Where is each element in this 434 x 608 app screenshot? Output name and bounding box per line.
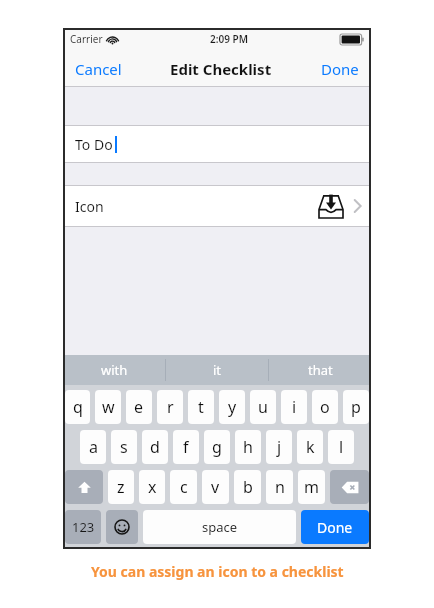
staticText: n <box>275 476 285 498</box>
staticText: e <box>134 396 144 418</box>
button[interactable]: s <box>111 430 137 464</box>
button[interactable]: p <box>343 390 369 424</box>
button[interactable]: n <box>266 470 293 504</box>
staticText: To Do <box>75 135 113 154</box>
button[interactable]: t <box>188 390 214 424</box>
staticText: u <box>258 396 268 418</box>
staticText: i <box>292 396 297 418</box>
button[interactable]: k <box>297 430 323 464</box>
staticText: space <box>202 518 238 536</box>
button[interactable]: j <box>266 430 292 464</box>
staticText: x <box>148 476 157 498</box>
button[interactable]: it <box>166 355 268 385</box>
button[interactable]: Done <box>319 55 361 83</box>
staticText: p <box>351 396 361 418</box>
button[interactable]: e <box>126 390 152 424</box>
button[interactable]: m <box>298 470 325 504</box>
button[interactable]: o <box>312 390 338 424</box>
staticText: that <box>308 361 333 379</box>
button[interactable]: 123 <box>65 510 101 544</box>
staticText: z <box>117 476 125 498</box>
button[interactable]: Cancel <box>73 55 124 83</box>
button[interactable]: z <box>108 470 134 504</box>
button[interactable]: with <box>63 355 165 385</box>
button[interactable]: y <box>219 390 245 424</box>
staticText: l <box>339 436 344 458</box>
staticText: Icon <box>75 197 104 216</box>
other: Inbox icon <box>316 191 346 221</box>
staticText: it <box>213 361 222 379</box>
staticText: d <box>150 436 160 458</box>
button[interactable]: Icon <box>63 186 371 226</box>
staticText: q <box>73 396 83 418</box>
staticText: m <box>304 476 319 498</box>
staticText: b <box>243 476 253 498</box>
staticText: 123 <box>72 518 95 536</box>
button[interactable]: c <box>170 470 197 504</box>
button[interactable]: Done <box>301 510 369 544</box>
staticText: g <box>212 436 222 458</box>
button[interactable]: r <box>157 390 183 424</box>
staticText: c <box>180 476 188 498</box>
button[interactable]: that <box>269 355 371 385</box>
button[interactable]: l <box>328 430 354 464</box>
staticText: Done <box>317 518 353 537</box>
button[interactable]: v <box>202 470 229 504</box>
staticText: with <box>101 361 128 379</box>
button[interactable]: f <box>173 430 199 464</box>
staticText: h <box>243 436 253 458</box>
button[interactable]: space <box>143 510 296 544</box>
staticText: o <box>320 396 330 418</box>
button[interactable]: b <box>234 470 261 504</box>
staticText: Edit Checklist <box>170 59 272 79</box>
staticText: You can assign an icon to a checklist <box>91 562 344 581</box>
button[interactable]: g <box>204 430 230 464</box>
button[interactable]: x <box>139 470 165 504</box>
staticText: 2:09 PM <box>210 32 248 46</box>
button[interactable]: d <box>142 430 168 464</box>
button[interactable]: a <box>80 430 106 464</box>
staticText: k <box>306 436 315 458</box>
button[interactable]: Shift <box>65 470 103 504</box>
staticText: r <box>167 396 174 418</box>
staticText: Carrier <box>70 32 103 46</box>
button[interactable]: To Do <box>63 126 371 162</box>
staticText: v <box>211 476 220 498</box>
staticText: Cancel <box>75 59 122 79</box>
button[interactable]: Emoji <box>106 510 138 544</box>
staticText: f <box>183 436 189 458</box>
button[interactable]: h <box>235 430 261 464</box>
button[interactable]: u <box>250 390 276 424</box>
staticText: w <box>102 396 115 418</box>
staticText: j <box>277 436 282 458</box>
button[interactable]: q <box>65 390 90 424</box>
staticText: t <box>198 396 204 418</box>
button[interactable]: Backspace <box>330 470 369 504</box>
staticText: Done <box>321 59 359 79</box>
staticText: y <box>228 396 237 418</box>
button[interactable]: w <box>95 390 121 424</box>
button[interactable]: i <box>281 390 307 424</box>
staticText: s <box>120 436 128 458</box>
staticText: a <box>89 436 98 458</box>
